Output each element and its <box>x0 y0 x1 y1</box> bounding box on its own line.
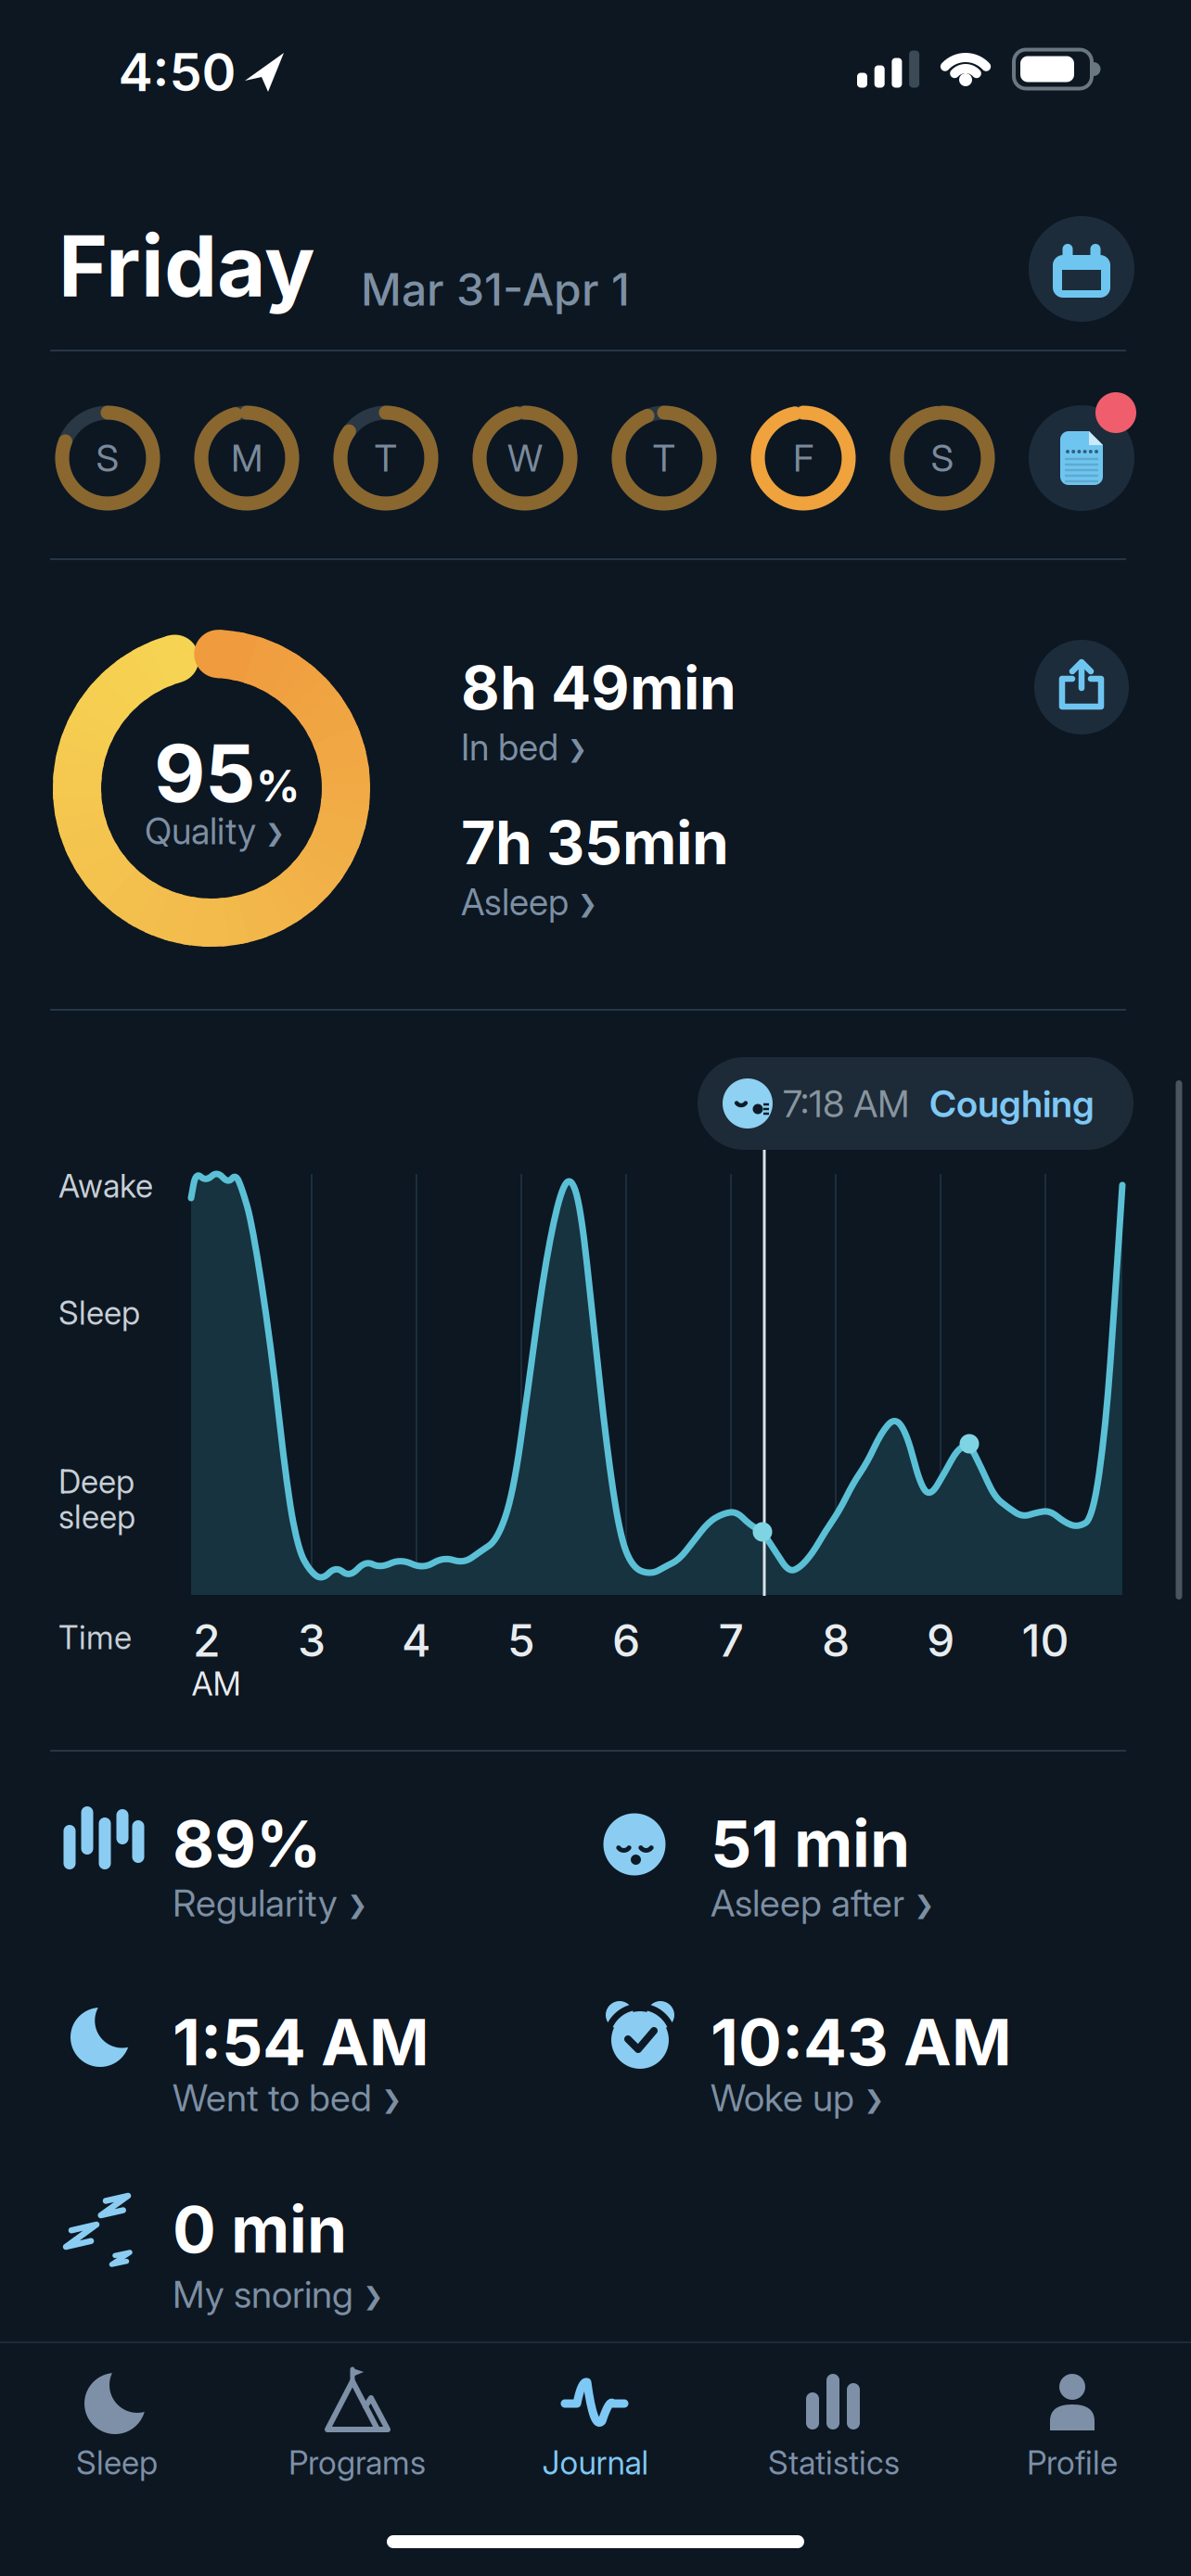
staticText: My snoring <box>173 2272 353 2317</box>
button[interactable]: T <box>612 406 717 510</box>
staticText: 5 <box>507 1613 535 1667</box>
button[interactable]: Journal <box>480 2360 711 2499</box>
staticText: In bed <box>461 726 558 769</box>
staticText: 7h 35min <box>461 807 729 879</box>
button[interactable]: 10:43 AM <box>0 0 301 78</box>
staticText: Journal <box>542 2443 649 2482</box>
staticText: Profile <box>1027 2443 1118 2482</box>
staticText: Sleep <box>58 1294 140 1332</box>
staticText: 10:43 AM <box>711 2003 1012 2081</box>
button[interactable]: Statistics <box>718 2360 950 2499</box>
staticText: 9 <box>927 1613 954 1667</box>
button[interactable]: Programs <box>241 2360 473 2499</box>
button[interactable]: S <box>55 406 160 510</box>
button[interactable]: F <box>751 406 856 510</box>
staticText: Deep <box>58 1462 134 1501</box>
staticText: 95 <box>154 725 256 821</box>
staticText: ❯ <box>568 735 587 763</box>
button[interactable]: T <box>333 406 438 510</box>
button[interactable]: Profile <box>956 2360 1188 2499</box>
button[interactable]: 51 min <box>0 0 224 78</box>
staticText: S <box>931 436 954 481</box>
staticText: ❯ <box>914 1890 934 1919</box>
staticText: 6 <box>612 1613 640 1667</box>
button[interactable]: M <box>194 406 299 510</box>
staticText: 8 <box>822 1613 850 1667</box>
staticText: 51 min <box>711 1804 910 1882</box>
button[interactable]: Quality 95 percent <box>0 0 140 96</box>
staticText: 1:54 AM <box>173 2003 429 2081</box>
staticText: F <box>793 436 813 481</box>
button[interactable]: Calendar <box>1029 216 1134 322</box>
staticText: ❯ <box>381 2085 402 2114</box>
staticText: M <box>231 436 263 481</box>
staticText: Went to bed <box>173 2075 372 2120</box>
staticText: 7 <box>718 1613 743 1667</box>
staticText: T <box>653 436 676 481</box>
staticText: T <box>374 436 397 481</box>
staticText: Asleep <box>461 880 569 924</box>
staticText: Regularity <box>173 1881 338 1925</box>
staticText: 0 min <box>173 2190 347 2268</box>
staticText: 10 <box>1022 1613 1069 1667</box>
button[interactable]: 8h 49min <box>461 652 736 769</box>
button[interactable]: Sleep <box>1 2360 233 2499</box>
staticText: Coughing <box>929 1081 1095 1126</box>
staticText: sleep <box>58 1498 135 1536</box>
staticText: AM <box>192 1664 241 1703</box>
staticText: Time <box>58 1618 132 1657</box>
staticText: ❯ <box>347 1890 368 1919</box>
button[interactable]: Share <box>1034 640 1129 734</box>
staticText: Mar 31-Apr 1 <box>361 262 630 316</box>
staticText: 89% <box>173 1804 321 1882</box>
staticText: ❯ <box>265 819 285 847</box>
staticText: Woke up <box>711 2075 854 2120</box>
staticText: Asleep after <box>711 1881 904 1925</box>
staticText: Quality <box>145 810 256 853</box>
staticText: 7:18 AM <box>783 1081 909 1126</box>
staticText: 2 <box>193 1613 221 1667</box>
button[interactable]: 1:54 AM <box>0 0 257 78</box>
button[interactable]: 0 min <box>0 0 211 78</box>
button[interactable]: Sleep notes <box>1029 405 1134 511</box>
staticText: ❯ <box>578 890 597 917</box>
staticText: 4:50 <box>118 41 236 104</box>
button[interactable]: S <box>890 406 995 510</box>
staticText: Programs <box>288 2443 426 2482</box>
staticText: Friday <box>58 215 315 317</box>
button[interactable]: 7h 35min <box>461 807 729 924</box>
staticText: Sleep <box>76 2443 158 2482</box>
staticText: W <box>507 436 543 481</box>
staticText: % <box>256 759 300 812</box>
staticText: 4 <box>402 1613 431 1667</box>
staticText: 3 <box>298 1613 326 1667</box>
staticText: ❯ <box>363 2282 383 2310</box>
staticText: S <box>96 436 119 481</box>
staticText: ❯ <box>864 2085 884 2114</box>
staticText: 8h 49min <box>461 652 736 724</box>
button[interactable]: W <box>473 406 577 510</box>
staticText: Statistics <box>768 2443 900 2482</box>
button[interactable]: 89% <box>0 0 195 78</box>
staticText: Awake <box>58 1167 153 1205</box>
